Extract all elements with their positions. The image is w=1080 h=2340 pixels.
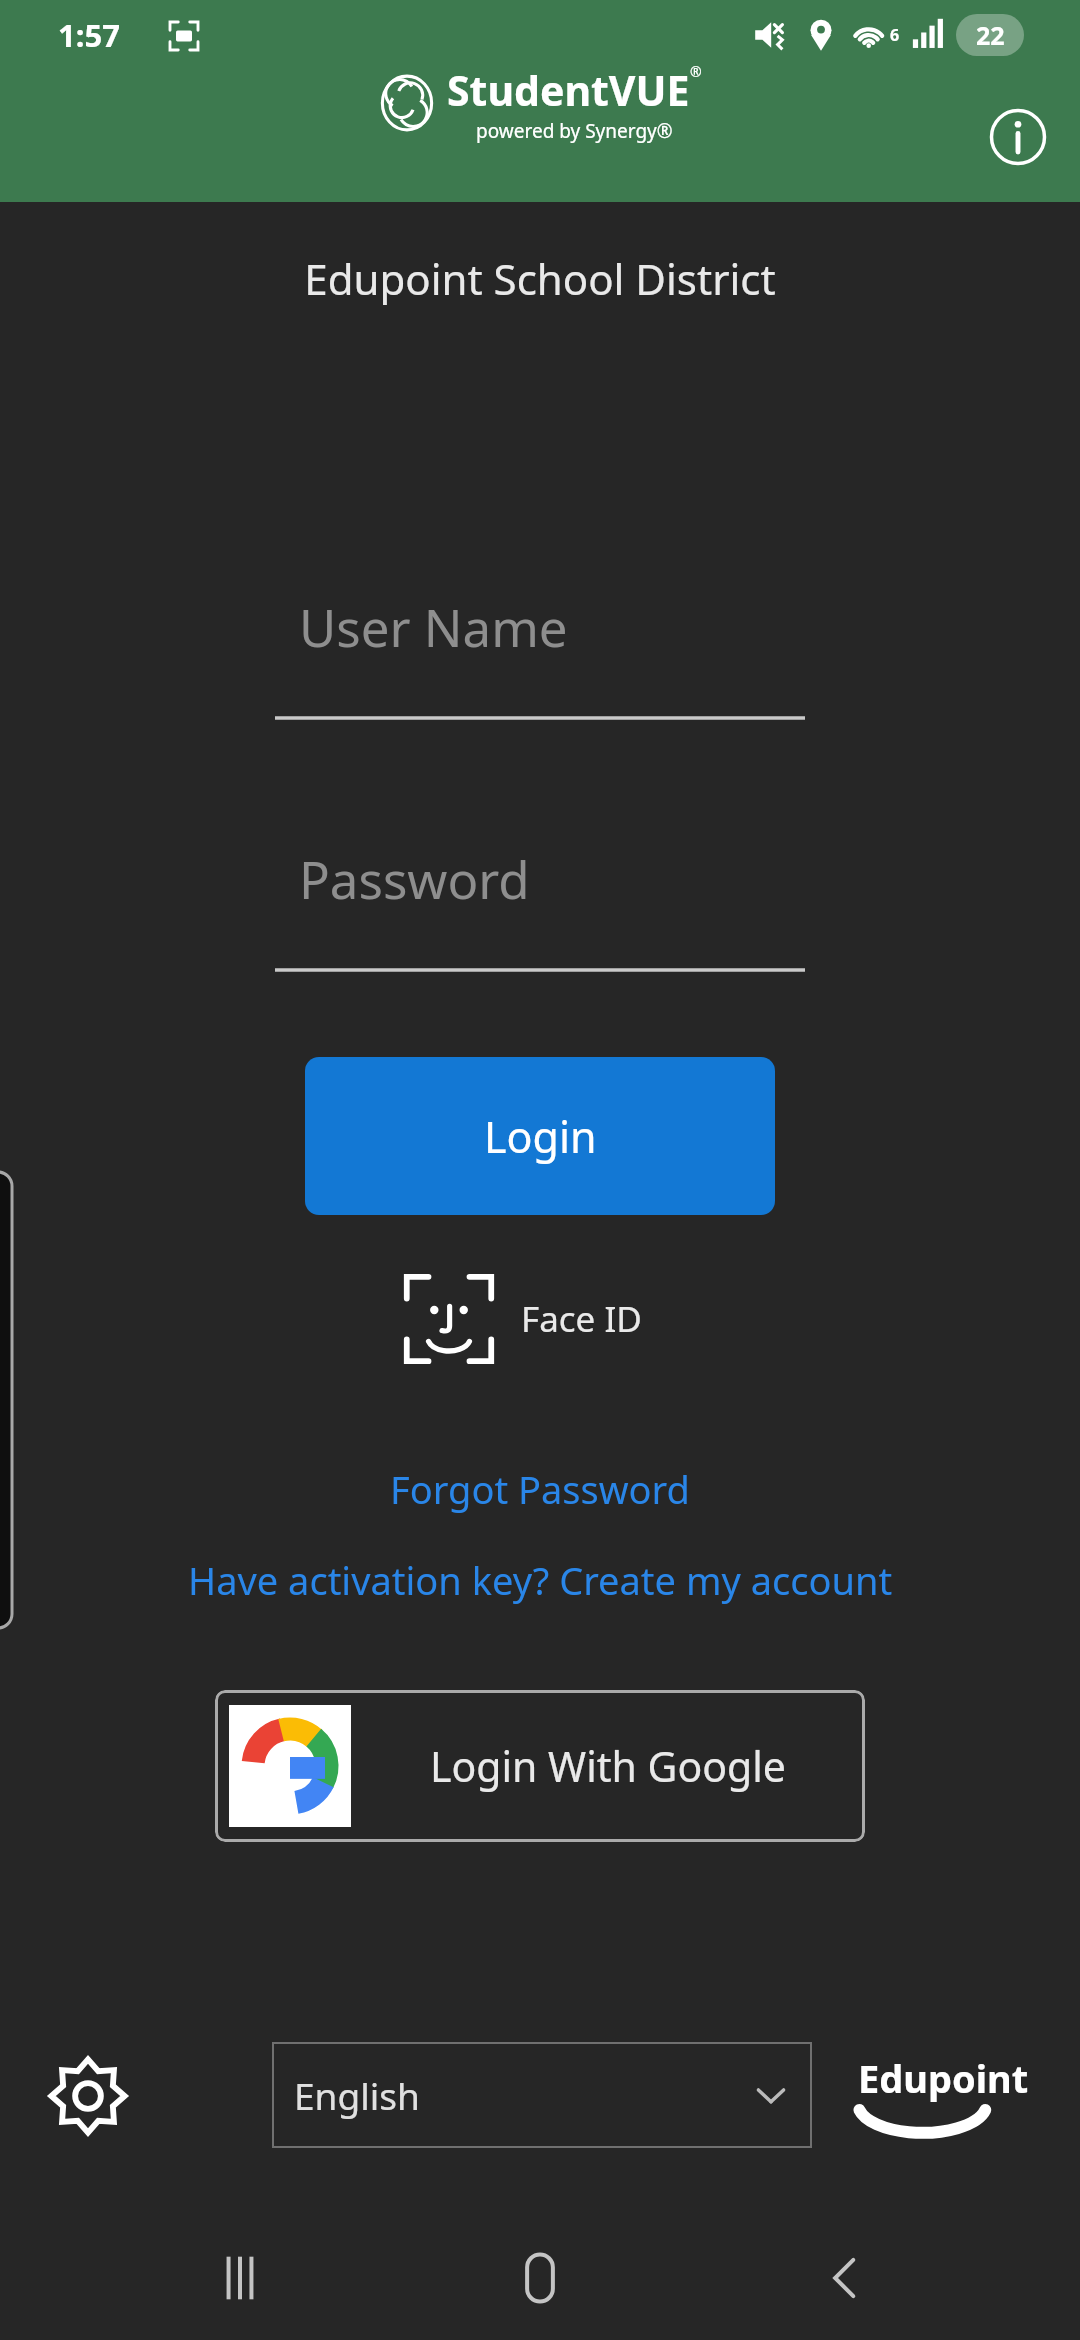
button[interactable]: Login: [305, 1057, 775, 1215]
button[interactable]: Information: [983, 102, 1053, 172]
staticText: 22: [976, 18, 1005, 52]
button[interactable]: Back: [803, 2236, 887, 2320]
staticText: Have activation key? Create my account: [188, 1554, 893, 1606]
staticText: Login: [484, 1107, 597, 1166]
button[interactable]: User Name: [275, 588, 805, 720]
staticText: StudentVUE: [447, 62, 690, 118]
staticText: Login With Google: [430, 1738, 786, 1794]
staticText: ®: [690, 62, 702, 81]
button[interactable]: Home: [498, 2236, 582, 2320]
staticText: Forgot Password: [390, 1463, 690, 1515]
button[interactable]: Have activation key? Create my account: [172, 1546, 909, 1614]
staticText: Edupoint: [858, 2052, 1029, 2104]
button[interactable]: Settings: [40, 2048, 136, 2144]
staticText: 6: [890, 24, 900, 46]
button[interactable]: English: [272, 2042, 812, 2148]
button[interactable]: Recent apps: [198, 2236, 282, 2320]
button[interactable]: Login With Google: [215, 1690, 865, 1842]
staticText: Face ID: [521, 1295, 642, 1343]
staticText: powered by Synergy®: [476, 118, 673, 144]
staticText: 1:57: [58, 14, 120, 56]
staticText: Password: [299, 844, 530, 913]
staticText: Edupoint School District: [0, 250, 1080, 307]
button[interactable]: Forgot Password: [374, 1455, 706, 1523]
button[interactable]: Password: [275, 840, 805, 972]
staticText: English: [294, 2070, 420, 2120]
staticText: User Name: [299, 592, 568, 661]
button[interactable]: Face ID: [385, 1255, 642, 1383]
